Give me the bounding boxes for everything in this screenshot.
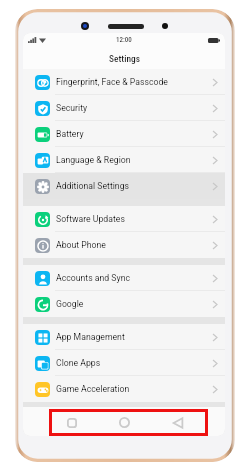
staticText: Game Acceleration (56, 384, 130, 394)
staticText: Security (56, 103, 88, 113)
button[interactable]: Software Updates (23, 206, 225, 232)
staticText: Language & Region (56, 155, 131, 165)
button[interactable]: Fingerprint, Face & Passcode (23, 69, 225, 95)
button[interactable]: Additional Settings (23, 173, 225, 199)
button[interactable]: Back (173, 418, 183, 428)
button[interactable]: Google (23, 291, 225, 317)
button[interactable]: Battery (23, 121, 225, 147)
staticText: Battery (56, 129, 84, 139)
staticText: Additional Settings (56, 181, 129, 191)
staticText: Settings (109, 53, 140, 64)
button[interactable]: Game Acceleration (23, 376, 225, 402)
staticText: About Phone (56, 240, 106, 250)
button[interactable]: About Phone (23, 232, 225, 258)
button[interactable]: Security (23, 95, 225, 121)
staticText: Fingerprint, Face & Passcode (56, 77, 168, 87)
button[interactable]: Language & Region (23, 147, 225, 173)
button[interactable]: App Management (23, 324, 225, 350)
button[interactable]: Home (119, 417, 130, 428)
button[interactable]: Recent apps (67, 418, 77, 428)
staticText: Accounts and Sync (56, 273, 130, 283)
button[interactable]: Clone Apps (23, 350, 225, 376)
staticText: Software Updates (56, 214, 125, 224)
staticText: Google (56, 299, 84, 309)
button[interactable]: Accounts and Sync (23, 265, 225, 291)
staticText: 12:00 (116, 36, 132, 44)
staticText: App Management (56, 332, 125, 342)
staticText: Clone Apps (56, 358, 101, 368)
